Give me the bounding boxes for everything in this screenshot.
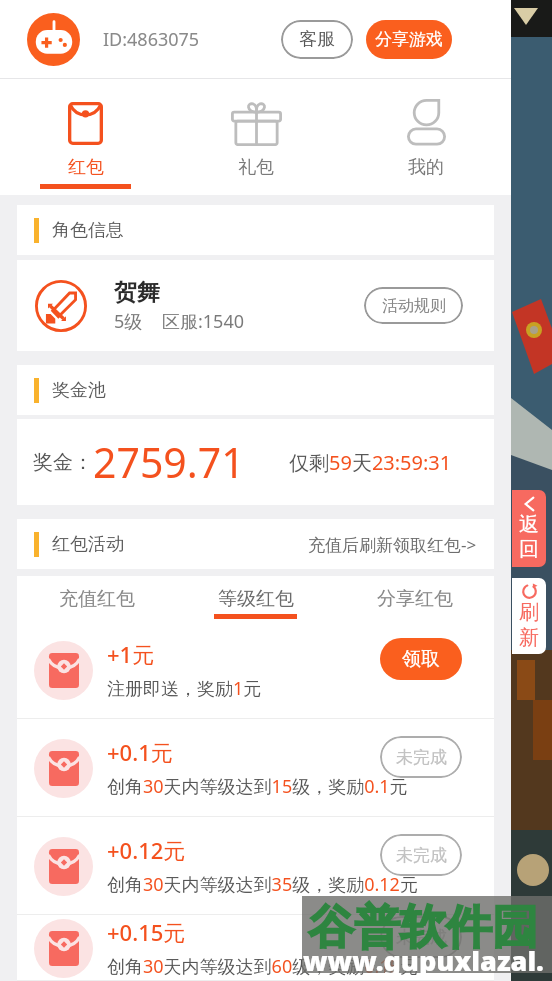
staticText: 创角30天内等级达到60级，奖励0.15元 xyxy=(107,954,418,979)
button[interactable]: 红包 xyxy=(0,79,171,195)
staticText: 未完成 xyxy=(396,845,447,866)
button[interactable]: 礼包 xyxy=(171,79,341,195)
staticText: 新 xyxy=(519,625,539,650)
staticText: ID:4863075 xyxy=(103,27,200,52)
staticText: 奖金： xyxy=(33,450,93,475)
staticText: 谷普软件园 xyxy=(308,899,538,957)
staticText: 创角30天内等级达到35级，奖励0.12元 xyxy=(107,872,418,897)
button[interactable]: 领取 xyxy=(380,638,462,680)
staticText: +1元 xyxy=(107,639,155,669)
button[interactable]: 等级红包 xyxy=(176,576,335,621)
button[interactable]: 分享游戏 xyxy=(366,20,452,59)
staticText: +0.15元 xyxy=(107,917,186,947)
button[interactable]: 未完成 xyxy=(380,736,462,778)
staticText: 充值红包 xyxy=(59,587,135,611)
staticText: 刷 xyxy=(519,600,539,625)
staticText: 回 xyxy=(519,537,539,562)
button[interactable]: Refresh xyxy=(512,578,546,654)
staticText: 未完成 xyxy=(396,927,447,948)
staticText: 领取 xyxy=(402,647,440,671)
staticText: 红包活动 xyxy=(52,533,124,556)
staticText: 分享红包 xyxy=(377,587,453,611)
staticText: 红包 xyxy=(68,156,104,179)
staticText: 角色信息 xyxy=(52,219,124,242)
staticText: 仅剩59天23:59:31 xyxy=(289,449,452,476)
button[interactable]: Back xyxy=(512,490,546,567)
button[interactable]: 活动规则 xyxy=(364,287,463,324)
button[interactable]: Game logo xyxy=(27,13,80,66)
staticText: 返 xyxy=(519,512,539,537)
staticText: 2759.71 xyxy=(93,434,245,490)
staticText: 未完成 xyxy=(396,747,447,768)
staticText: www.gupuxlazal.com xyxy=(303,942,552,981)
button[interactable]: 未完成 xyxy=(380,916,462,958)
staticText: +0.12元 xyxy=(107,835,186,865)
staticText: 奖金池 xyxy=(52,379,106,402)
button[interactable]: 分享红包 xyxy=(335,576,494,621)
staticText: 活动规则 xyxy=(382,296,446,316)
button[interactable]: 客服 xyxy=(281,20,353,59)
staticText: 5级 xyxy=(114,309,143,334)
button[interactable]: 我的 xyxy=(341,79,511,195)
staticText: 我的 xyxy=(408,156,444,179)
staticText: 创角30天内等级达到15级，奖励0.1元 xyxy=(107,774,408,799)
staticText: 等级红包 xyxy=(218,587,294,611)
staticText: +0.1元 xyxy=(107,737,173,767)
staticText: 礼包 xyxy=(238,156,274,179)
staticText: 贺舞 xyxy=(114,278,160,307)
staticText: 分享游戏 xyxy=(375,29,443,50)
button[interactable]: 充值红包 xyxy=(17,576,176,621)
staticText: 充值后刷新领取红包-> xyxy=(308,533,477,556)
button[interactable]: 未完成 xyxy=(380,834,462,876)
staticText: 注册即送，奖励1元 xyxy=(107,676,262,701)
staticText: 客服 xyxy=(299,28,335,51)
staticText: 区服:1540 xyxy=(162,309,245,334)
